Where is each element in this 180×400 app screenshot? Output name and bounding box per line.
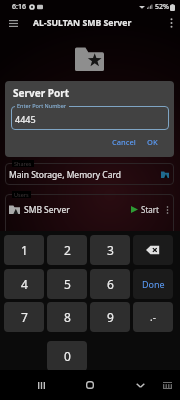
staticText: 5: [64, 276, 71, 292]
button[interactable]: Delete: [133, 235, 173, 265]
button[interactable]: 4: [4, 269, 44, 299]
button[interactable]: Cancel: [108, 135, 140, 149]
button[interactable]: 5: [47, 269, 87, 299]
button[interactable]: 6: [90, 269, 130, 299]
staticText: OK: [147, 137, 158, 147]
staticText: SMB Server: [24, 204, 70, 216]
button[interactable]: 9: [90, 302, 130, 332]
staticText: Main Storage, Memory Card: [9, 169, 121, 181]
staticText: 9: [107, 309, 114, 325]
staticText: 3: [107, 242, 114, 258]
staticText: 6: [107, 276, 114, 292]
button[interactable]: 3: [90, 235, 130, 265]
button[interactable]: 0: [47, 341, 87, 371]
staticText: Shares: [14, 160, 32, 167]
staticText: Done: [142, 278, 165, 290]
staticText: 8: [64, 309, 71, 325]
staticText: 7: [21, 309, 28, 325]
button[interactable]: More options: [162, 14, 180, 32]
staticText: 4: [21, 276, 28, 292]
staticText: Enter Port Number: [17, 102, 67, 109]
button[interactable]: Choose shared folders: [158, 167, 172, 181]
button[interactable]: 8: [47, 302, 87, 332]
button[interactable]: Recent apps: [29, 373, 53, 397]
button[interactable]: 1: [4, 235, 44, 265]
button[interactable]: 2: [47, 235, 87, 265]
button[interactable]: Hide keyboard: [128, 373, 152, 397]
button[interactable]: Home: [78, 373, 102, 397]
button[interactable]: Done: [133, 269, 173, 299]
staticText: .-: [150, 310, 156, 324]
staticText: 52%: [155, 2, 169, 12]
staticText: 4445: [15, 113, 36, 125]
button[interactable]: Open navigation menu: [0, 14, 26, 32]
staticText: 6:16: [12, 2, 26, 12]
staticText: 1: [21, 242, 28, 258]
button[interactable]: OK: [143, 135, 162, 149]
button[interactable]: .-: [133, 302, 173, 332]
staticText: Server Port: [13, 86, 69, 100]
staticText: 2: [64, 242, 71, 258]
button[interactable]: Start: [129, 202, 161, 217]
button[interactable]: Change keyboard: [155, 373, 179, 397]
staticText: 0: [64, 348, 71, 364]
staticText: AL-SULTAN SMB Server: [33, 17, 132, 29]
staticText: Start: [141, 204, 159, 215]
staticText: Cancel: [112, 137, 136, 147]
button[interactable]: 7: [4, 302, 44, 332]
staticText: Users: [14, 191, 29, 198]
button[interactable]: Server options: [163, 203, 171, 217]
